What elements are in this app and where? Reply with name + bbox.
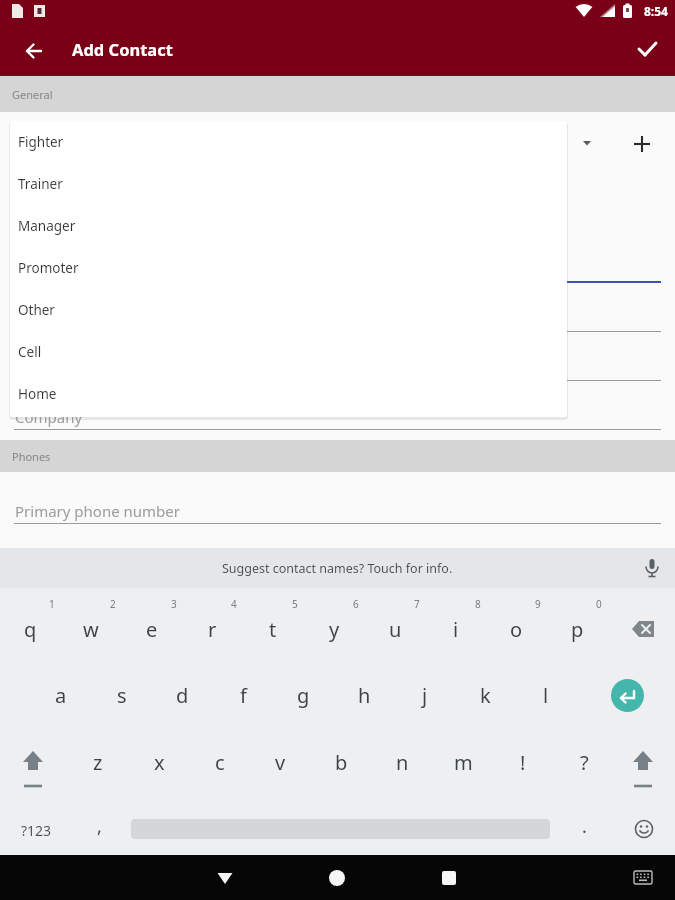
button[interactable]: o <box>492 607 540 651</box>
button[interactable] <box>14 27 54 71</box>
staticText: i <box>453 616 459 643</box>
button[interactable]: a <box>37 673 85 717</box>
staticText: 0 <box>596 597 602 611</box>
button[interactable]: d <box>158 673 206 717</box>
button[interactable]: Manager <box>10 205 567 247</box>
staticText: General <box>12 87 53 102</box>
button[interactable] <box>610 678 644 712</box>
button[interactable]: Trainer <box>10 163 567 205</box>
button[interactable]: g <box>279 673 327 717</box>
staticText: Home <box>18 385 57 403</box>
button[interactable] <box>628 130 656 158</box>
button[interactable]: n <box>378 740 426 784</box>
button[interactable]: q <box>6 607 54 651</box>
button[interactable]: t <box>249 607 297 651</box>
button[interactable]: b <box>317 740 365 784</box>
button[interactable]: w <box>67 607 115 651</box>
button[interactable] <box>629 814 659 844</box>
staticText: ? <box>580 749 589 776</box>
staticText: Phones <box>12 449 51 464</box>
staticText: Fighter <box>18 133 64 151</box>
button[interactable]: Suggest contact names? Touch for info. <box>0 548 675 588</box>
button[interactable] <box>622 610 664 648</box>
button[interactable]: l <box>522 673 570 717</box>
button[interactable]: ? <box>560 740 608 784</box>
button[interactable]: Promoter <box>10 247 567 289</box>
staticText: f <box>240 682 247 709</box>
staticText: Promoter <box>18 259 79 277</box>
button[interactable] <box>13 741 53 791</box>
staticText: w <box>83 616 99 643</box>
staticText: r <box>208 616 217 643</box>
staticText: h <box>358 682 371 709</box>
staticText: 5 <box>292 597 298 611</box>
staticText: 1 <box>49 597 55 611</box>
button[interactable] <box>317 857 357 897</box>
button[interactable]: h <box>340 673 388 717</box>
button[interactable]: f <box>219 673 267 717</box>
staticText: 8:54 <box>644 3 668 19</box>
staticText: s <box>117 682 127 709</box>
staticText: p <box>571 616 584 643</box>
button[interactable] <box>205 857 245 897</box>
button[interactable]: v <box>256 740 304 784</box>
staticText: v <box>275 749 286 776</box>
staticText: 3 <box>171 597 177 611</box>
button[interactable] <box>628 862 658 892</box>
staticText: m <box>454 749 473 776</box>
button[interactable]: e <box>128 607 176 651</box>
staticText: Suggest contact names? Touch for info. <box>222 560 453 577</box>
staticText: Manager <box>18 217 76 235</box>
staticText: j <box>422 682 428 709</box>
button[interactable]: . <box>560 804 608 848</box>
button[interactable]: u <box>371 607 419 651</box>
staticText: o <box>510 616 523 643</box>
staticText: t <box>269 616 277 643</box>
staticText: Other <box>18 301 55 319</box>
button[interactable]: i <box>432 607 480 651</box>
staticText: Add Contact <box>72 38 173 60</box>
staticText: Primary phone number <box>15 501 180 521</box>
staticText: 9 <box>535 597 541 611</box>
button[interactable] <box>429 857 469 897</box>
button[interactable]: s <box>98 673 146 717</box>
button[interactable]: m <box>439 740 487 784</box>
button[interactable]: ! <box>499 740 547 784</box>
staticText: 8 <box>475 597 481 611</box>
staticText: e <box>146 616 158 643</box>
button[interactable]: c <box>196 740 244 784</box>
staticText: l <box>543 682 549 709</box>
button[interactable] <box>627 29 667 69</box>
staticText: z <box>93 749 103 776</box>
button[interactable] <box>623 741 663 791</box>
staticText: u <box>389 616 402 643</box>
button[interactable]: Cell <box>10 331 567 373</box>
staticText: c <box>215 749 225 776</box>
staticText: Cell <box>18 343 42 361</box>
staticText: q <box>24 616 37 643</box>
button[interactable]: Home <box>10 373 567 415</box>
button[interactable]: Other <box>10 289 567 331</box>
staticText: n <box>396 749 409 776</box>
staticText: 4 <box>231 597 237 611</box>
staticText: x <box>154 749 165 776</box>
button[interactable]: j <box>401 673 449 717</box>
staticText: 2 <box>110 597 116 611</box>
button[interactable]: y <box>310 607 358 651</box>
button[interactable]: ?123 <box>14 816 58 844</box>
button[interactable]: r <box>188 607 236 651</box>
staticText: . <box>582 814 587 839</box>
staticText: Trainer <box>18 175 63 193</box>
button[interactable]: x <box>135 740 183 784</box>
staticText: 6 <box>353 597 359 611</box>
staticText: g <box>297 682 310 709</box>
staticText: k <box>480 682 491 709</box>
button[interactable]: , <box>75 804 123 848</box>
button[interactable]: p <box>553 607 601 651</box>
button[interactable]: z <box>74 740 122 784</box>
button[interactable]: k <box>461 673 509 717</box>
staticText: , <box>97 814 102 839</box>
staticText: d <box>176 682 189 709</box>
button[interactable]: Fighter <box>10 121 567 163</box>
